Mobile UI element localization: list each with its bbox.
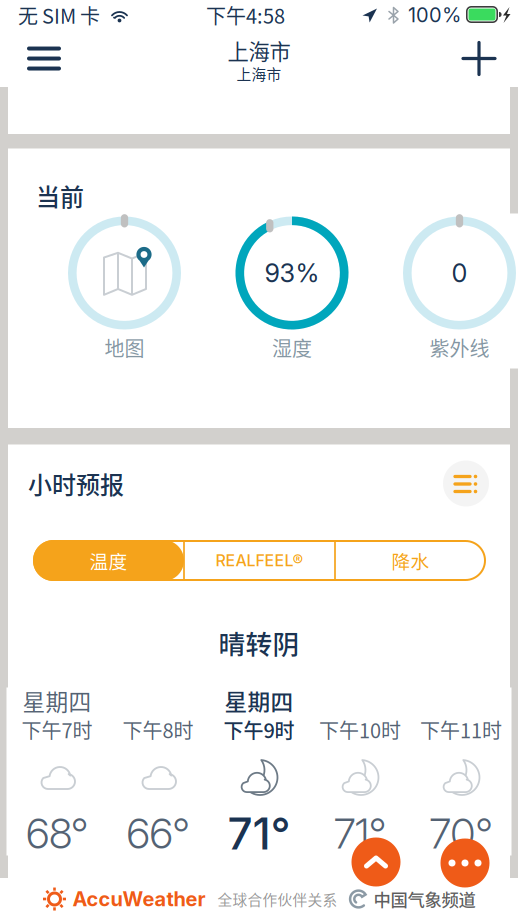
staticText: 93%	[264, 258, 319, 288]
staticText: 晴转阴	[218, 623, 299, 662]
staticText: 降水	[391, 547, 429, 574]
button[interactable]: 地图	[44, 213, 204, 368]
button[interactable]: 温度	[33, 540, 184, 581]
staticText: 小时预报	[28, 466, 124, 501]
staticText: 71°	[334, 808, 386, 858]
button[interactable]: 0	[379, 213, 518, 368]
staticText: 下午4:58	[206, 0, 285, 29]
staticText: 中国气象频道	[373, 886, 475, 912]
staticText: 星期四	[22, 684, 91, 717]
staticText: 66°	[126, 808, 189, 858]
staticText: 0	[451, 258, 467, 288]
staticText: 下午8时	[122, 715, 193, 744]
staticText: 下午10时	[319, 715, 401, 744]
staticText: 下午9时	[223, 715, 294, 744]
button[interactable]: 降水	[335, 540, 486, 581]
staticText: AccuWeather	[72, 887, 205, 911]
staticText: 上海市	[227, 35, 290, 66]
staticText: 68°	[26, 808, 88, 858]
staticText: 上海市	[236, 63, 281, 84]
staticText: 紫外线	[429, 333, 489, 362]
staticText: 地图	[104, 333, 144, 362]
button[interactable]: Add location	[461, 37, 497, 79]
button[interactable]: REALFEEL®	[184, 540, 335, 581]
staticText: 全球合作伙伴关系	[217, 888, 337, 910]
staticText: 当前	[36, 178, 84, 213]
staticText: 无 SIM 卡	[18, 0, 100, 29]
staticText: 星期四	[224, 684, 293, 717]
staticText: REALFEEL®	[215, 551, 303, 570]
button[interactable]: Scroll to top	[351, 837, 400, 886]
staticText: 温度	[89, 547, 127, 574]
staticText: 71°	[227, 807, 290, 860]
button[interactable]: 93%	[212, 213, 372, 368]
staticText: 100%	[408, 3, 461, 27]
staticText: 湿度	[272, 333, 312, 362]
button[interactable]: Menu	[27, 37, 61, 79]
staticText: 70°	[429, 808, 492, 858]
button[interactable]: More options	[440, 838, 489, 887]
staticText: 下午11时	[420, 715, 502, 744]
staticText: 下午7时	[21, 715, 92, 744]
button[interactable]: Switch to list view	[443, 460, 489, 506]
